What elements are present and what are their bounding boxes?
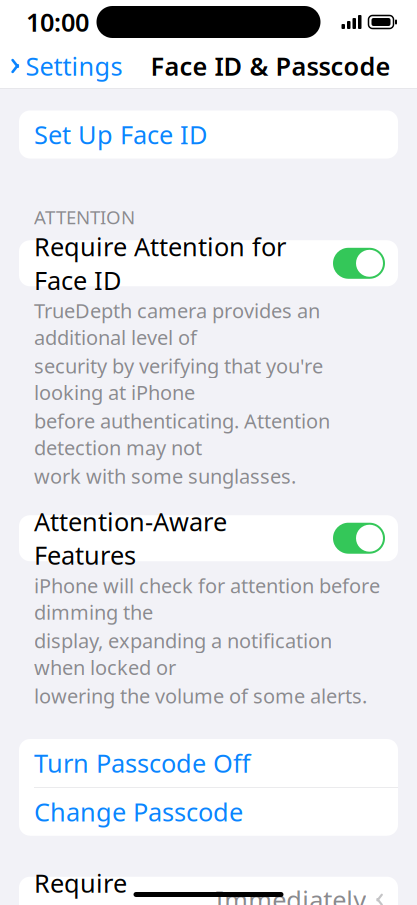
staticText: Turn Passcode Off: [34, 746, 250, 780]
staticText: Settings: [25, 49, 122, 83]
staticText: Attention-Aware Features: [34, 505, 227, 572]
staticText: Change Passcode: [34, 795, 243, 828]
button[interactable]: Attention-Aware Features: [19, 515, 398, 561]
staticText: work with some sunglasses.: [34, 463, 296, 489]
button[interactable]: Set Up Face ID: [19, 110, 398, 158]
staticText: iPhone will check for attention before d…: [34, 572, 380, 625]
staticText: Face ID & Passcode: [150, 49, 390, 83]
staticText: Require Passcode: [34, 866, 144, 905]
staticText: lowering the volume of some alerts.: [34, 682, 367, 709]
button[interactable]: Settings: [0, 44, 130, 88]
staticText: 10:00: [26, 5, 89, 39]
button[interactable]: Require Passcode: [19, 877, 398, 905]
staticText: Immediately: [215, 883, 366, 905]
button[interactable]: Require Attention for Face ID: [19, 240, 398, 286]
staticText: Require Attention for Face ID: [34, 230, 286, 297]
staticText: security by verifying that you're lookin…: [34, 352, 323, 405]
button[interactable]: Change Passcode: [19, 788, 398, 836]
staticText: Set Up Face ID: [34, 118, 207, 151]
staticText: display, expanding a notification when l…: [34, 627, 332, 680]
staticText: before authenticating. Attention detecti…: [34, 407, 330, 461]
button[interactable]: Turn Passcode Off: [19, 739, 398, 787]
staticText: TrueDepth camera provides an additional …: [34, 297, 320, 350]
staticText: ATTENTION: [34, 204, 135, 229]
